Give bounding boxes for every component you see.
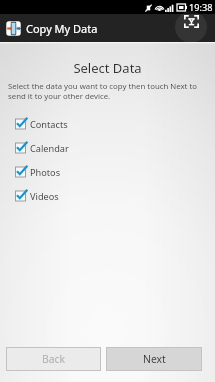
staticText: Select the data you want to copy then to…	[8, 81, 201, 101]
staticText: Photos	[30, 166, 61, 179]
button[interactable]: Next	[106, 347, 202, 371]
button[interactable]: Contacts	[0, 112, 215, 136]
staticText: Videos	[30, 190, 59, 203]
staticText: Back	[42, 352, 66, 366]
button[interactable]: Back	[6, 347, 101, 371]
button[interactable]: Scan QR code	[176, 14, 206, 42]
staticText: Calendar	[30, 142, 69, 155]
staticText: Next	[143, 352, 166, 366]
staticText: Copy My Data	[26, 21, 98, 36]
button[interactable]: Photos	[0, 160, 215, 184]
staticText: Contacts	[30, 118, 68, 131]
button[interactable]: Videos	[0, 184, 215, 208]
staticText: 19:38	[189, 1, 213, 14]
staticText: Select Data	[0, 59, 215, 77]
button[interactable]: App icon	[4, 19, 23, 38]
button[interactable]: Calendar	[0, 136, 215, 160]
